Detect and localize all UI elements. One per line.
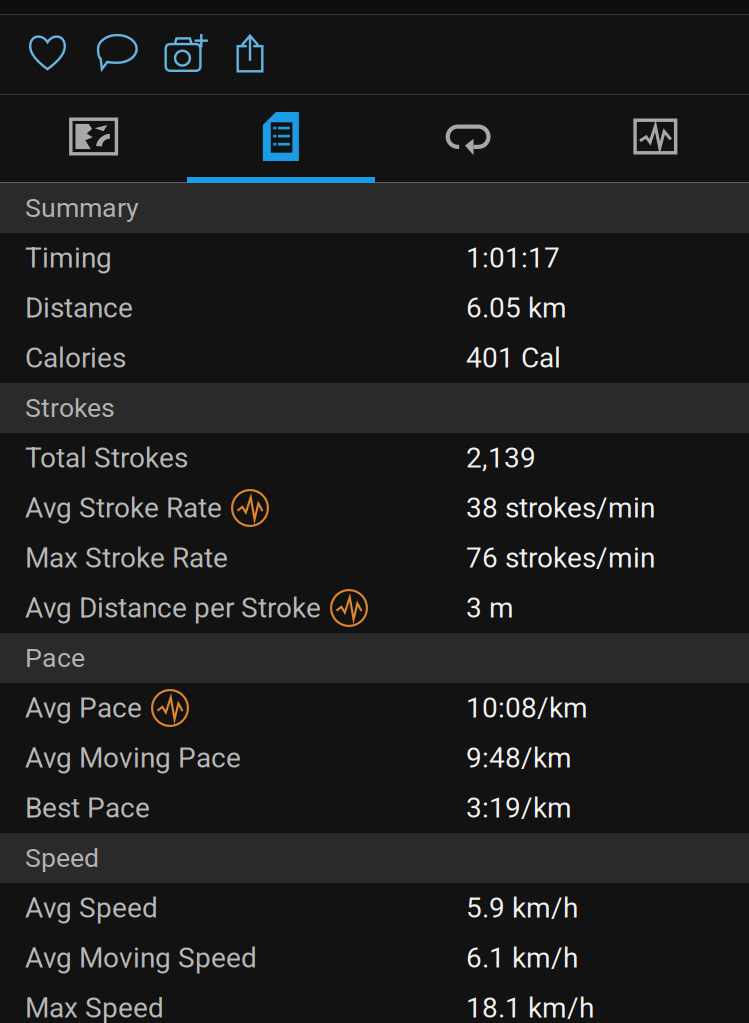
staticText: Max Stroke Rate (25, 542, 228, 574)
staticText: 3:19/km (466, 792, 572, 824)
button[interactable]: Like (13, 15, 82, 94)
button[interactable]: Share (220, 15, 280, 94)
staticText: Avg Stroke Rate (25, 492, 222, 524)
staticText: 76 strokes/min (466, 542, 655, 574)
staticText: Total Strokes (25, 442, 188, 474)
button[interactable]: Timing (0, 233, 749, 283)
button[interactable]: Map (0, 95, 187, 183)
staticText: Max Speed (25, 992, 164, 1023)
button[interactable]: Best Pace (0, 783, 749, 833)
staticText: 401 Cal (466, 342, 561, 374)
button[interactable]: Max Stroke Rate (0, 533, 749, 583)
staticText: Strokes (25, 392, 115, 424)
button[interactable]: Add photo (151, 15, 220, 94)
button[interactable]: Total Strokes (0, 433, 749, 483)
button[interactable]: Avg Stroke Rate (0, 483, 749, 533)
button[interactable]: Avg Speed (0, 883, 749, 933)
staticText: Avg Pace (25, 692, 142, 724)
button[interactable]: Max Speed (0, 983, 749, 1023)
button[interactable]: Comment (82, 15, 151, 94)
staticText: 18.1 km/h (466, 992, 594, 1023)
button[interactable]: Distance (0, 283, 749, 333)
button[interactable]: Details (187, 95, 374, 183)
staticText: Best Pace (25, 792, 150, 824)
staticText: 2,139 (466, 442, 536, 474)
staticText: 1:01:17 (466, 242, 560, 274)
staticText: 6.05 km (466, 292, 567, 324)
staticText: Avg Moving Speed (25, 942, 257, 974)
staticText: Calories (25, 342, 126, 374)
button[interactable]: Avg Distance per Stroke (0, 583, 749, 633)
staticText: Avg Speed (25, 892, 158, 924)
button[interactable]: Avg Moving Pace (0, 733, 749, 783)
staticText: Distance (25, 292, 133, 324)
staticText: 5.9 km/h (466, 892, 578, 924)
staticText: Timing (25, 242, 112, 274)
staticText: 38 strokes/min (466, 492, 655, 524)
button[interactable]: Laps (374, 95, 562, 183)
staticText: Summary (25, 192, 139, 224)
button[interactable]: Calories (0, 333, 749, 383)
staticText: 3 m (466, 592, 514, 624)
staticText: Avg Distance per Stroke (25, 592, 321, 624)
staticText: 6.1 km/h (466, 942, 578, 974)
staticText: Pace (25, 642, 85, 674)
button[interactable]: Avg Pace (0, 683, 749, 733)
button[interactable]: Charts (562, 95, 749, 183)
staticText: Speed (25, 842, 99, 874)
staticText: Avg Moving Pace (25, 742, 241, 774)
staticText: 9:48/km (466, 742, 572, 774)
button[interactable]: Avg Moving Speed (0, 933, 749, 983)
staticText: 10:08/km (466, 692, 588, 724)
